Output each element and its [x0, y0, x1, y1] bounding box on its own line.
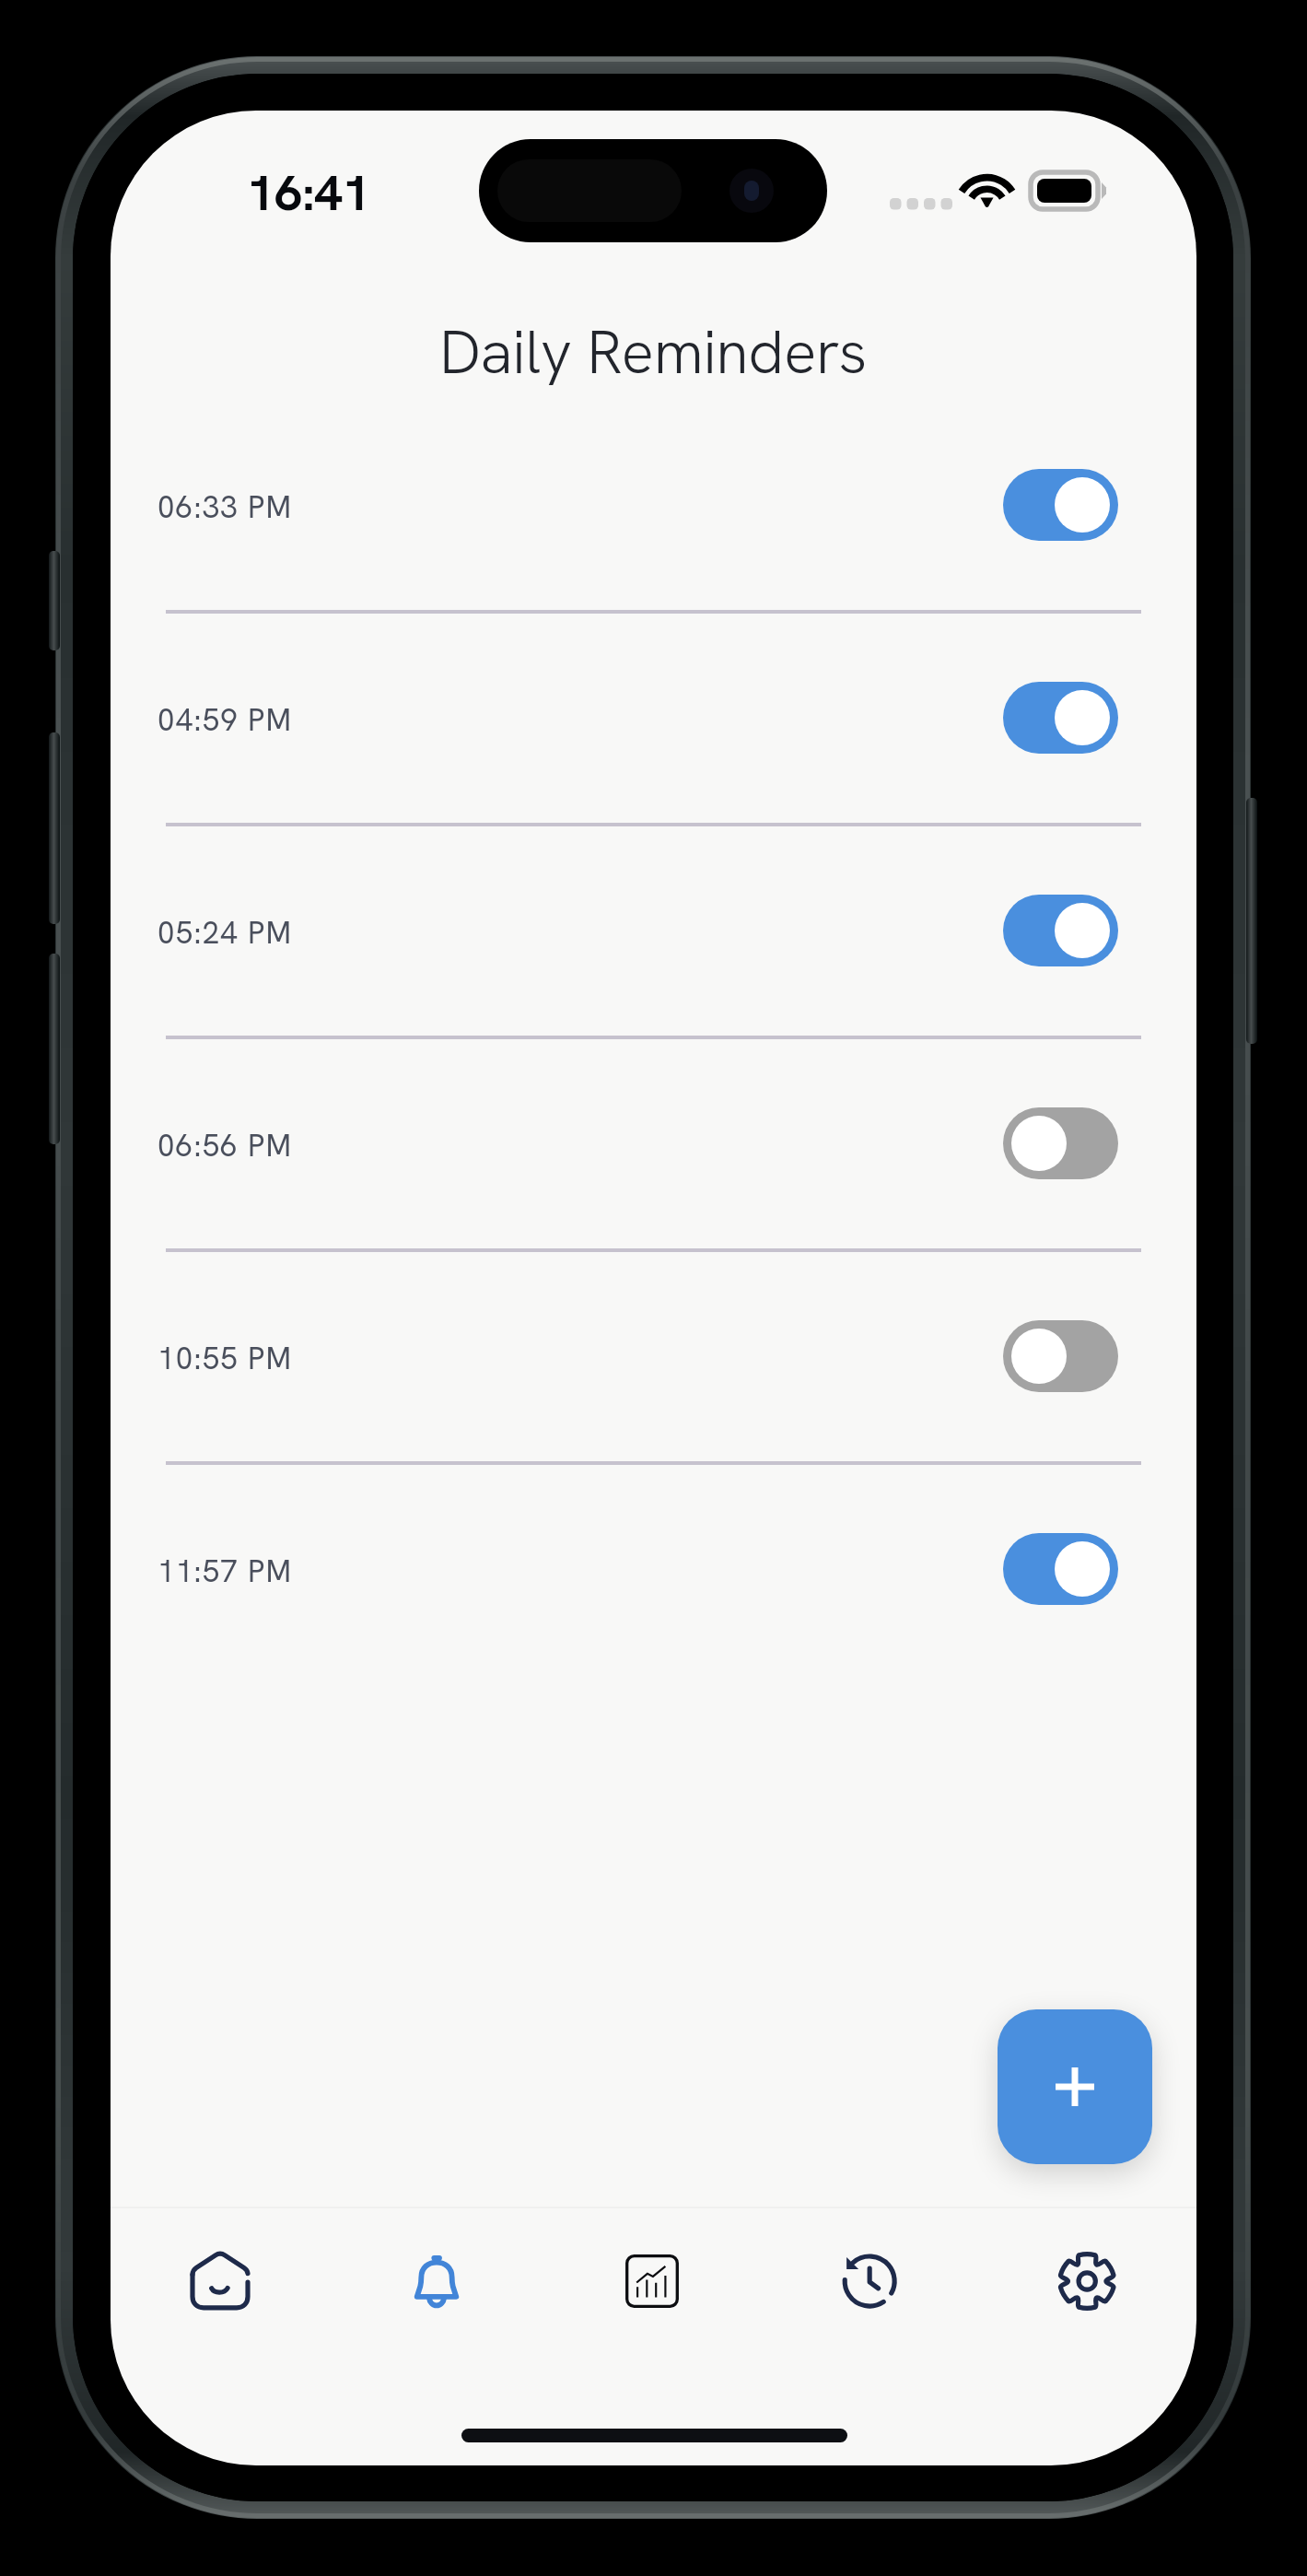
button[interactable]: Enabled: [1003, 895, 1118, 966]
button[interactable]: Add reminder: [998, 2009, 1152, 2164]
button[interactable]: 11:57 PM: [111, 1463, 1196, 1676]
button[interactable]: 04:59 PM: [111, 612, 1196, 825]
button[interactable]: Enabled: [1003, 1533, 1118, 1605]
staticText: 04:59 PM: [158, 700, 293, 740]
staticText: 16:41: [247, 160, 370, 225]
button[interactable]: 06:56 PM: [111, 1037, 1196, 1250]
staticText: 06:56 PM: [158, 1126, 293, 1165]
button[interactable]: Settings: [1031, 2226, 1141, 2336]
staticText: Daily Reminders: [439, 312, 868, 392]
button[interactable]: Statistics: [597, 2226, 707, 2336]
button[interactable]: Disabled: [1003, 1107, 1118, 1179]
button[interactable]: Enabled: [1003, 469, 1118, 541]
button[interactable]: Disabled: [1003, 1320, 1118, 1392]
staticText: 11:57 PM: [158, 1551, 293, 1591]
staticText: 10:55 PM: [158, 1339, 293, 1378]
button[interactable]: 05:24 PM: [111, 825, 1196, 1037]
button[interactable]: Enabled: [1003, 682, 1118, 754]
staticText: 05:24 PM: [158, 913, 293, 953]
button[interactable]: 10:55 PM: [111, 1250, 1196, 1463]
button[interactable]: Reminders: [381, 2226, 492, 2336]
button[interactable]: History: [814, 2226, 925, 2336]
button[interactable]: 06:33 PM: [111, 399, 1196, 612]
staticText: 06:33 PM: [158, 487, 293, 527]
button[interactable]: Home: [165, 2226, 275, 2336]
